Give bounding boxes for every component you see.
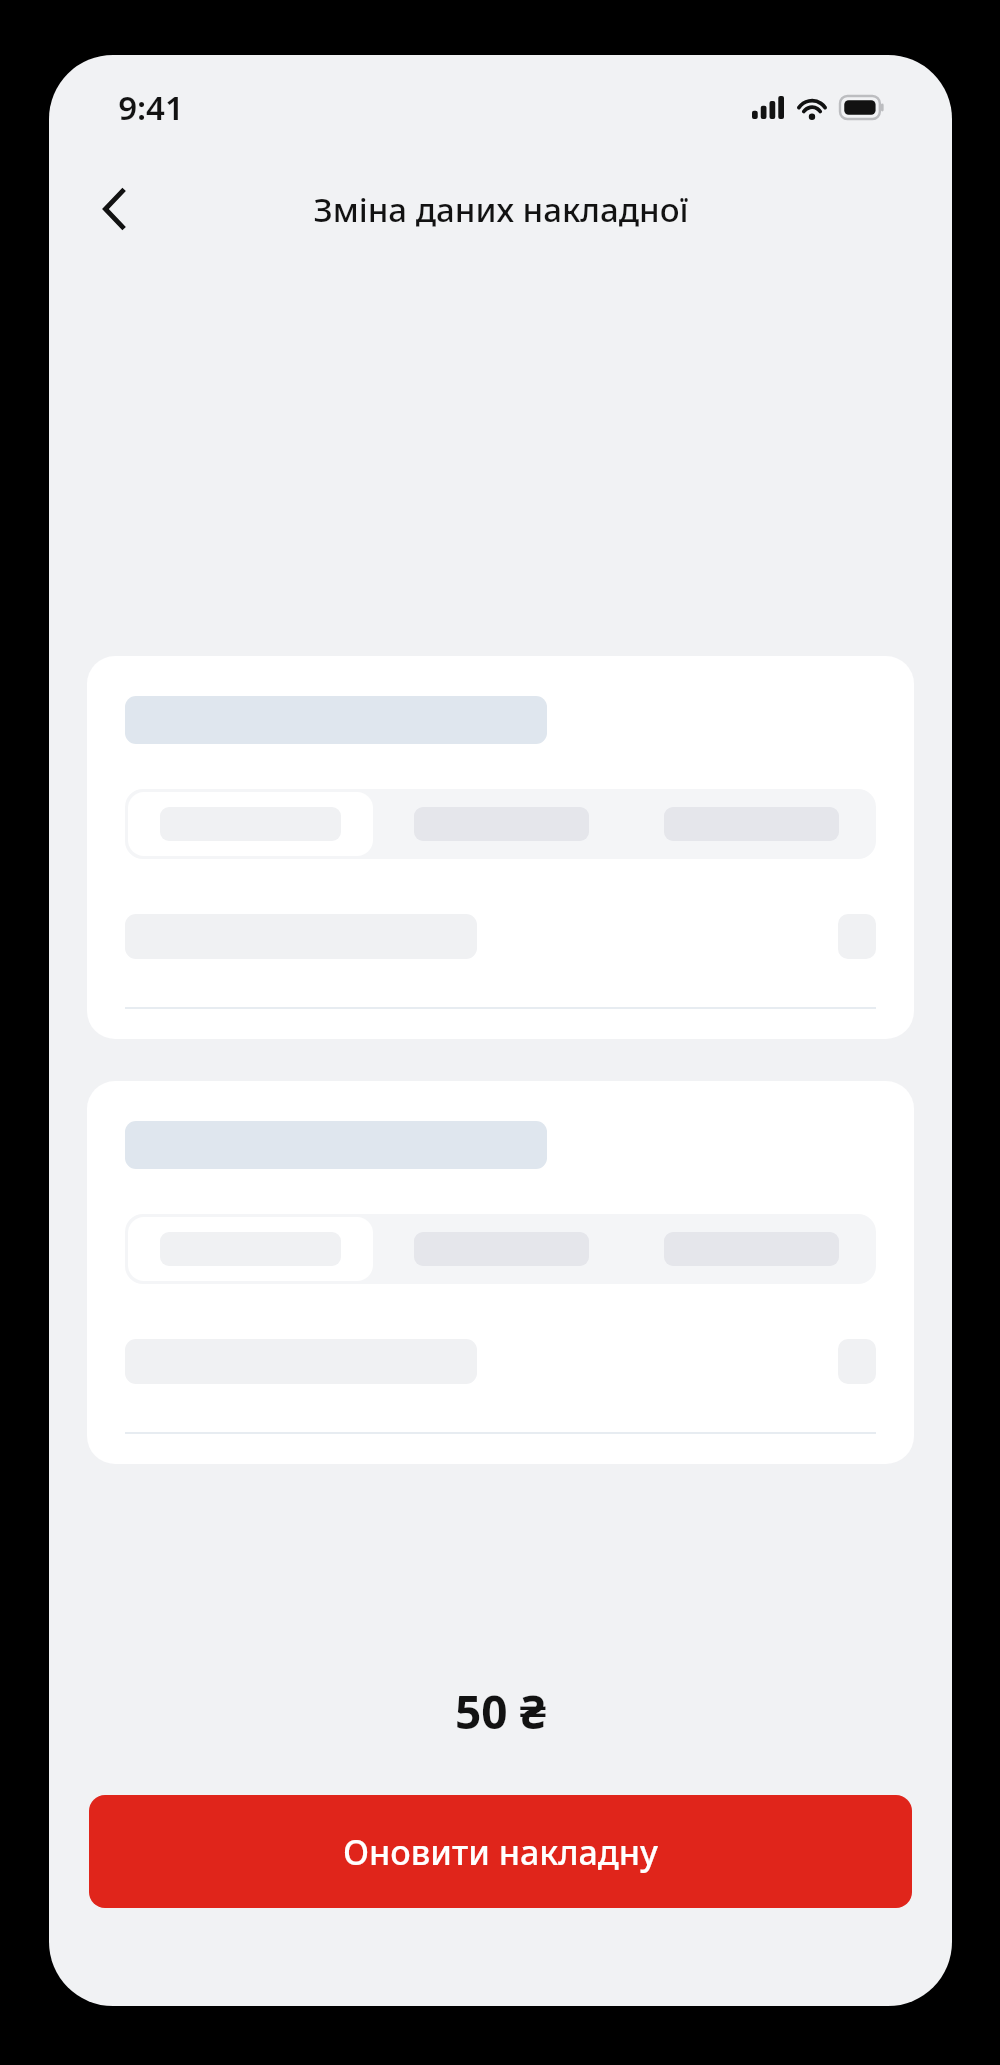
staticText: Оновити накладну xyxy=(343,1829,658,1875)
staticText: Зміна даних накладної xyxy=(313,187,689,232)
button[interactable] xyxy=(128,792,373,856)
button[interactable] xyxy=(87,1081,914,1464)
staticText: 50 ₴ xyxy=(455,1680,546,1743)
button[interactable]: Оновити накладну xyxy=(89,1795,912,1908)
button[interactable] xyxy=(376,789,626,859)
staticText: 9:41 xyxy=(118,85,184,130)
button[interactable] xyxy=(376,1214,626,1284)
button[interactable] xyxy=(128,1217,373,1281)
button[interactable]: Back xyxy=(77,171,153,247)
button[interactable] xyxy=(626,789,876,859)
button[interactable] xyxy=(626,1214,876,1284)
button[interactable] xyxy=(87,656,914,1039)
